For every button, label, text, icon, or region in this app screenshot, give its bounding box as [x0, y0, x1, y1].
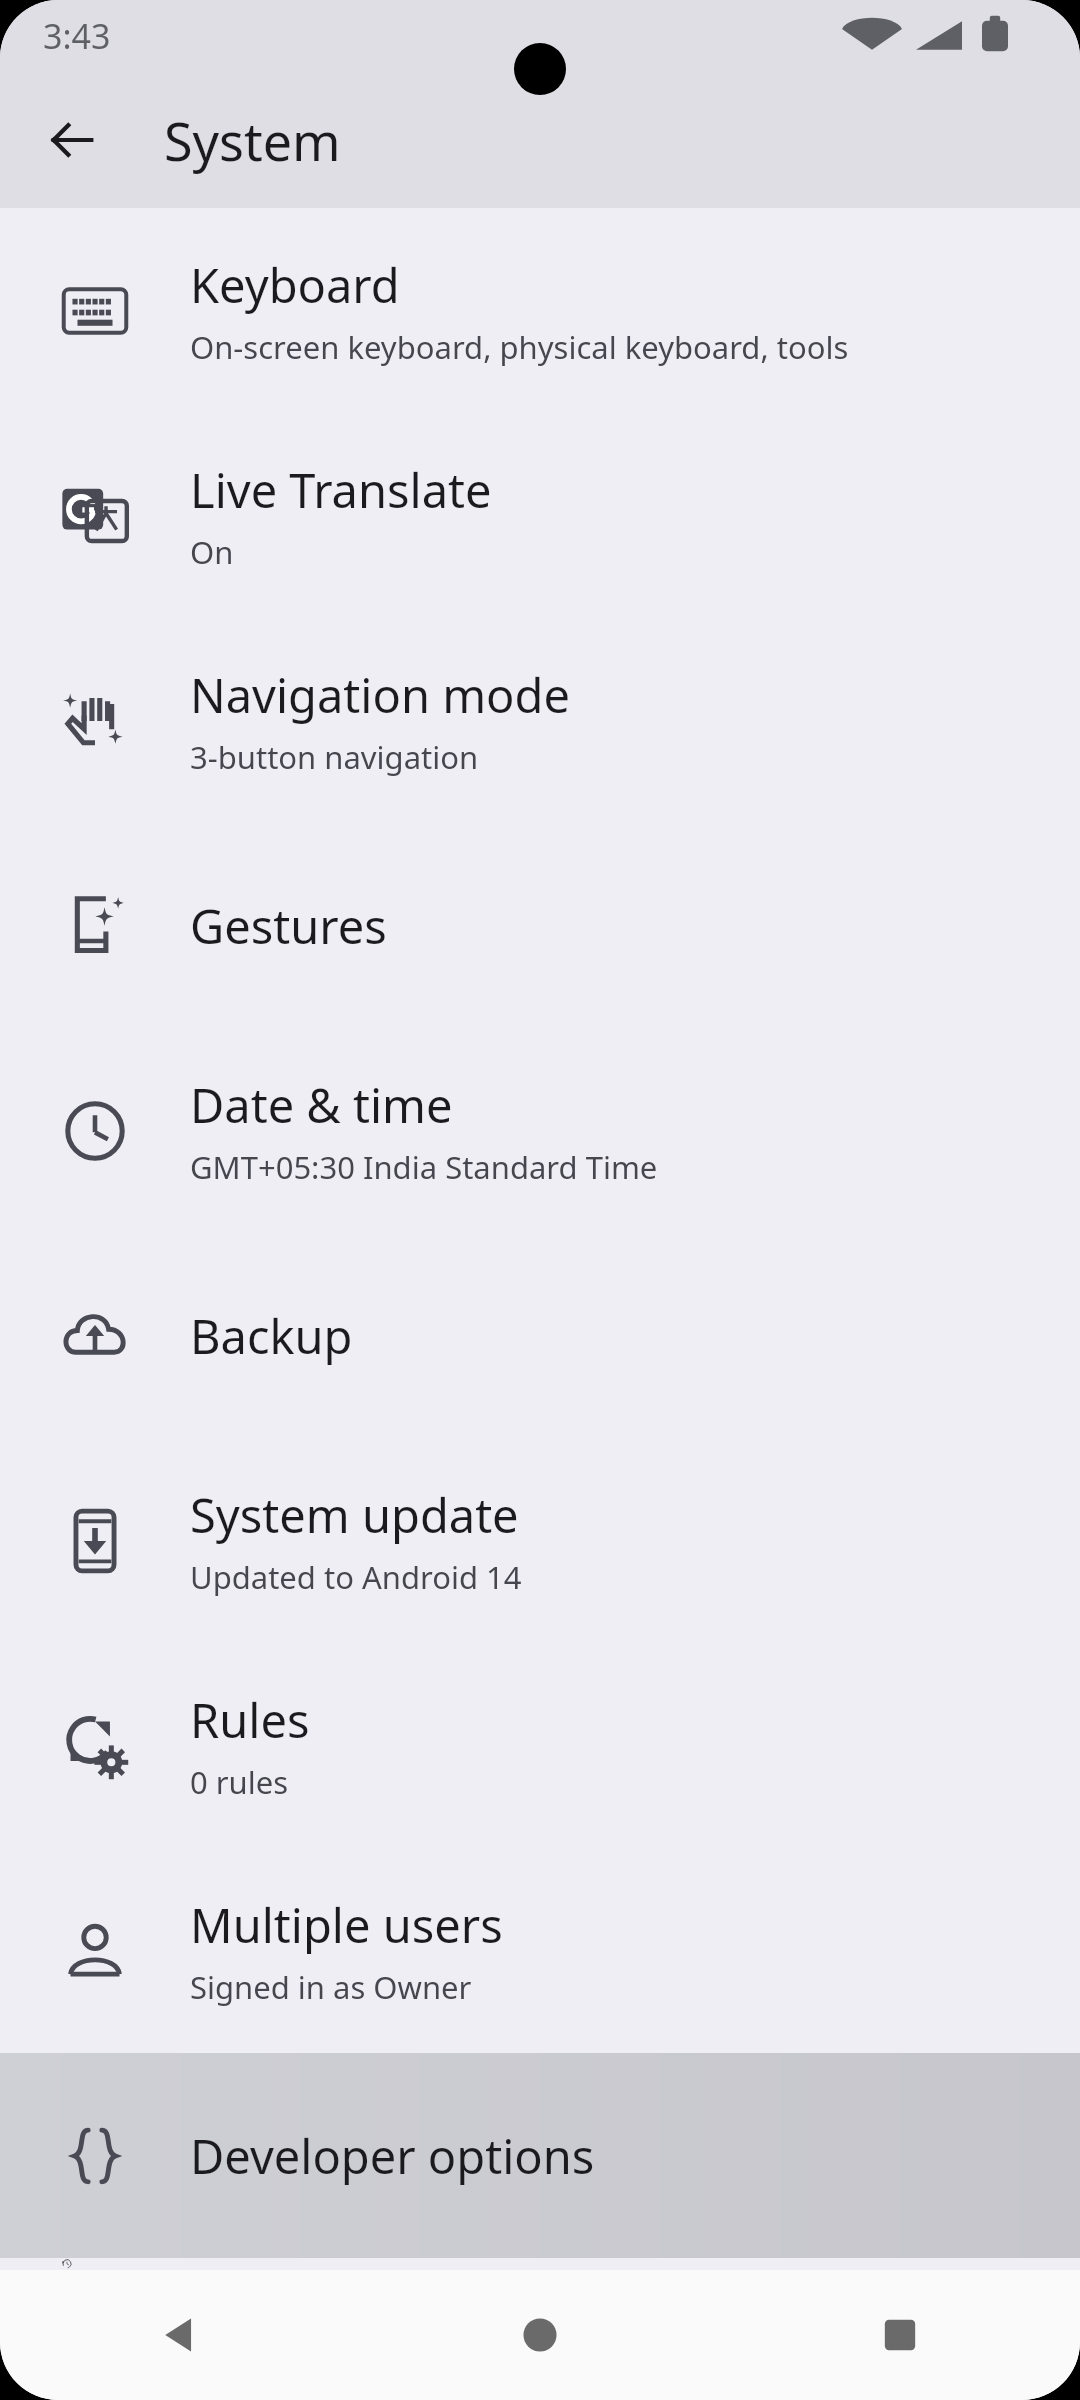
button[interactable]: Gestures [0, 823, 1080, 1028]
staticText: Updated to Android 14 [190, 1556, 522, 1598]
button[interactable]: Navigation mode [0, 618, 1080, 823]
button[interactable]: System update [0, 1438, 1080, 1643]
staticText: Navigation mode [190, 663, 570, 727]
button[interactable]: Multiple users [0, 1848, 1080, 2053]
staticText: Rules [190, 1688, 310, 1752]
button[interactable]: Reset options [0, 2258, 1080, 2270]
button[interactable]: Back [0, 2270, 360, 2400]
staticText: Backup [190, 1304, 353, 1368]
staticText: Keyboard [190, 253, 400, 317]
button[interactable]: Recent apps [720, 2270, 1080, 2400]
button[interactable]: Live Translate [0, 413, 1080, 618]
staticText: On [190, 531, 234, 573]
staticText: Date & time [190, 1073, 453, 1137]
staticText: 3:43 [43, 13, 111, 59]
staticText: System [164, 105, 341, 176]
button[interactable]: Keyboard [0, 208, 1080, 413]
button[interactable]: Developer options [0, 2053, 1080, 2258]
staticText: Live Translate [190, 458, 492, 522]
button[interactable]: Rules [0, 1643, 1080, 1848]
staticText: System update [190, 1483, 519, 1547]
staticText: Multiple users [190, 1893, 503, 1957]
staticText: 0 rules [190, 1761, 289, 1803]
staticText: GMT+05:30 India Standard Time [190, 1146, 658, 1188]
staticText: 3-button navigation [190, 736, 479, 778]
staticText: Signed in as Owner [190, 1966, 472, 2008]
button[interactable]: Back [28, 96, 116, 184]
staticText: Gestures [190, 894, 387, 958]
button[interactable]: Date & time [0, 1028, 1080, 1233]
button[interactable]: Backup [0, 1233, 1080, 1438]
button[interactable]: Home [360, 2270, 720, 2400]
staticText: On-screen keyboard, physical keyboard, t… [190, 326, 849, 368]
staticText: Developer options [190, 2124, 595, 2188]
